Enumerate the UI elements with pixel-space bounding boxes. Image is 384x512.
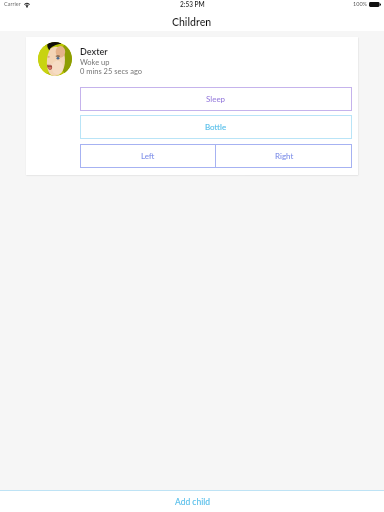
staticText: Right [275,151,294,161]
staticText: Left [141,151,155,161]
staticText: Sleep [206,94,226,104]
staticText: Dexter [80,46,108,57]
button[interactable]: Dexter profile photo [38,42,72,76]
staticText: 0 mins 25 secs ago [80,67,142,76]
button[interactable]: Sleep [80,87,352,111]
staticText: Bottle [205,122,227,132]
button[interactable]: Add child [0,491,384,512]
staticText: Add child [175,497,210,507]
staticText: Children [172,16,212,29]
button[interactable]: Bottle [80,115,352,139]
staticText: Woke up [80,58,110,67]
staticText: 2:53 PM [180,1,205,9]
staticText: Carrier [4,1,21,8]
button[interactable]: Right [216,144,352,168]
button[interactable]: Left [80,144,215,168]
staticText: 100% [353,1,367,8]
